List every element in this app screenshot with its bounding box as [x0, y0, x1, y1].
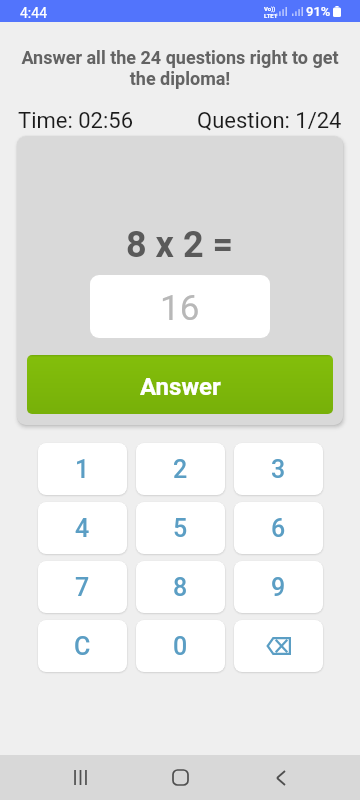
button[interactable]: Backspace: [234, 620, 323, 672]
staticText: 6: [271, 514, 286, 543]
button[interactable]: 9: [234, 561, 323, 613]
button[interactable]: Answer: [27, 355, 333, 414]
staticText: 8: [173, 573, 188, 602]
button[interactable]: 1: [38, 443, 127, 495]
button[interactable]: 4: [38, 502, 127, 554]
staticText: 9: [271, 573, 286, 602]
button[interactable]: 6: [234, 502, 323, 554]
button[interactable]: 16: [90, 275, 270, 338]
staticText: Answer: [140, 373, 221, 401]
staticText: 5: [173, 514, 188, 543]
button[interactable]: 8: [136, 561, 225, 613]
button[interactable]: 3: [234, 443, 323, 495]
button[interactable]: Recents: [56, 755, 104, 800]
button[interactable]: 7: [38, 561, 127, 613]
staticText: Answer all the 24 questions right to get…: [14, 47, 346, 89]
staticText: 8 x 2 =: [126, 224, 234, 266]
staticText: 1: [75, 455, 90, 484]
staticText: 3: [271, 455, 286, 484]
staticText: Time: 02:56: [18, 108, 134, 134]
button[interactable]: Back: [256, 755, 304, 800]
button[interactable]: 2: [136, 443, 225, 495]
staticText: Vo)): [264, 5, 276, 12]
button[interactable]: C: [38, 620, 127, 672]
staticText: 4:44: [20, 5, 47, 21]
button[interactable]: Home: [156, 755, 204, 800]
staticText: 0: [173, 632, 188, 661]
staticText: Question: 1/24: [197, 108, 342, 134]
staticText: 16: [160, 288, 200, 329]
button[interactable]: 5: [136, 502, 225, 554]
staticText: LTE1: [264, 12, 278, 19]
staticText: 7: [75, 573, 90, 602]
staticText: 2: [173, 455, 188, 484]
staticText: C: [74, 632, 91, 661]
button[interactable]: 0: [136, 620, 225, 672]
staticText: 4: [75, 514, 90, 543]
staticText: 91%: [306, 4, 331, 19]
